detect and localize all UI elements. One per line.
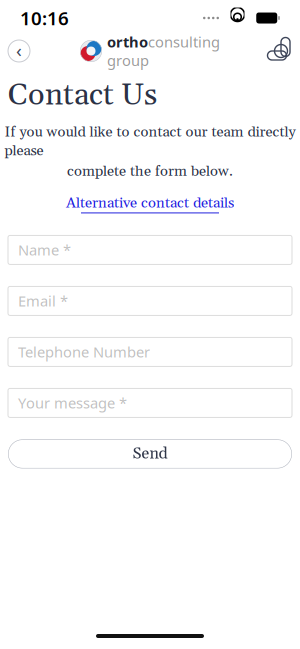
staticText: ‹ [16, 38, 22, 62]
staticText: Send [132, 444, 167, 464]
staticText: 10:16 [20, 6, 69, 30]
staticText: If you would like to contact our team di… [4, 123, 295, 160]
staticText: Email * [18, 291, 68, 311]
button[interactable]: Your message * [8, 388, 292, 417]
button[interactable]: Name * [8, 235, 292, 264]
staticText: Alternative contact details [66, 194, 234, 212]
staticText: complete the form below. [67, 162, 233, 181]
staticText: group [107, 50, 149, 70]
staticText: Your message * [18, 393, 127, 413]
button[interactable]: Telephone Number [8, 337, 292, 366]
button[interactable]: Alternative contact details [66, 194, 234, 213]
staticText: Telephone Number [18, 342, 150, 362]
button[interactable]: Back [4, 36, 34, 66]
staticText: Contact Us [8, 76, 157, 115]
button[interactable]: Send [8, 439, 292, 468]
button[interactable]: Email * [8, 286, 292, 315]
staticText: ortho [107, 32, 148, 51]
button[interactable]: Call [266, 36, 296, 66]
staticText: Name * [18, 240, 71, 260]
staticText: consulting [148, 32, 220, 51]
